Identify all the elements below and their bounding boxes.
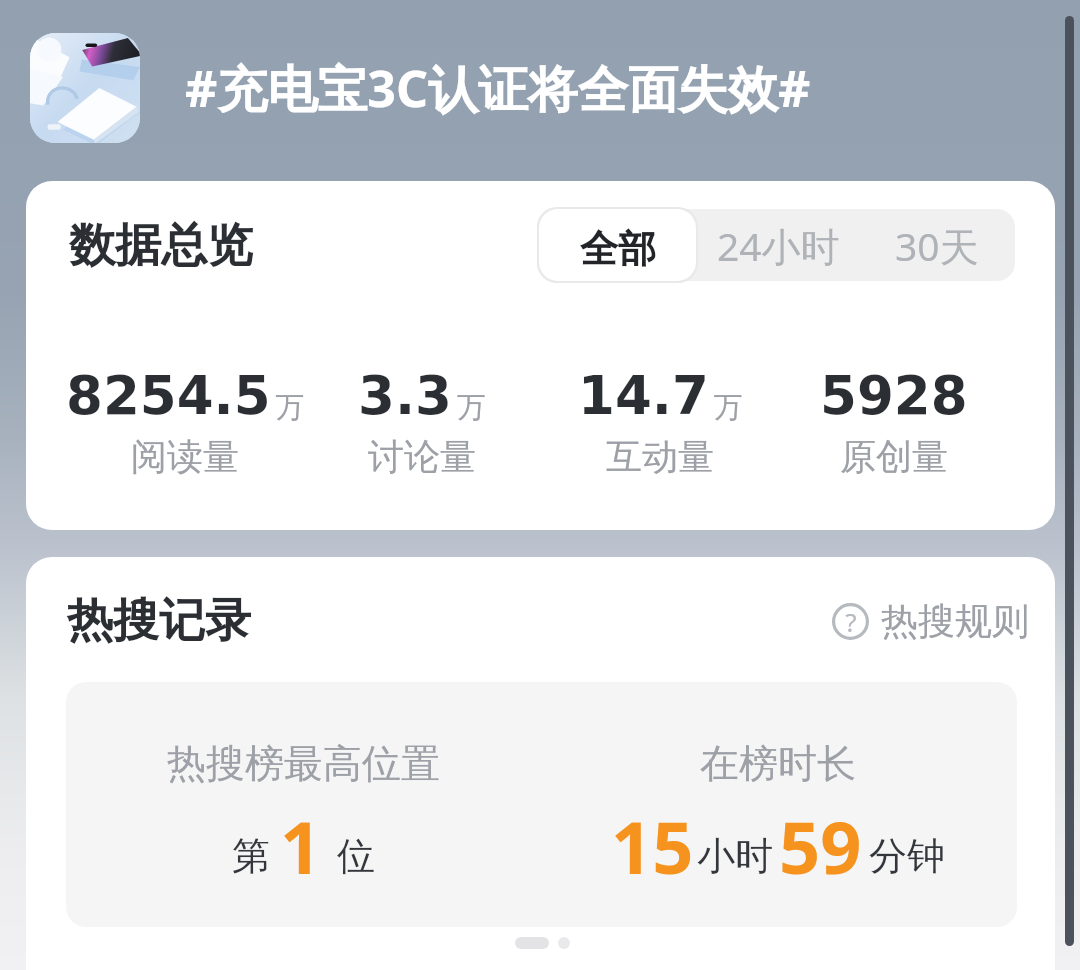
button[interactable]: 5928	[734, 365, 1054, 479]
staticText: 热搜榜最高位置	[167, 739, 440, 788]
staticText: 分钟	[869, 832, 945, 880]
staticText: 15	[611, 797, 694, 895]
button[interactable]: 热搜榜最高位置	[83, 682, 523, 927]
staticText: 1	[280, 797, 322, 895]
staticText: 5928	[820, 365, 968, 427]
staticText: 第	[232, 832, 270, 880]
staticText: 8254.5 万	[66, 365, 305, 427]
staticText: 全部	[580, 225, 656, 273]
button[interactable]: 热搜记录	[67, 592, 251, 650]
button[interactable]: 在榜时长	[558, 682, 998, 927]
staticText: 讨论量	[368, 434, 476, 479]
staticText: 14.7 万	[578, 365, 743, 427]
other: 热搜规则	[832, 603, 869, 640]
staticText: ?	[845, 604, 857, 639]
button[interactable]: 30天	[858, 209, 1015, 281]
button[interactable]: 3.3 万	[262, 365, 582, 479]
button[interactable]: 8254.5 万	[26, 365, 345, 479]
button[interactable]: 24小时	[698, 209, 858, 281]
staticText: 在榜时长	[700, 739, 856, 788]
staticText: 阅读量	[131, 434, 239, 479]
staticText: 3.3 万	[358, 365, 486, 427]
button[interactable]: 话题封面图	[0, 0, 1080, 176]
button[interactable]: 数据总览	[69, 217, 253, 275]
button[interactable]: 14.7 万	[500, 365, 820, 479]
staticText: 热搜规则	[881, 598, 1029, 645]
other: 话题封面图	[30, 33, 140, 143]
staticText: 原创量	[840, 434, 948, 479]
staticText: 热搜记录	[67, 592, 251, 650]
button[interactable]: 全部	[539, 209, 696, 281]
staticText: 互动量	[606, 434, 714, 479]
staticText: 24小时	[717, 219, 840, 272]
staticText: 30天	[895, 219, 979, 272]
staticText: 数据总览	[69, 217, 253, 275]
staticText: 位	[337, 832, 375, 880]
staticText: #充电宝3C认证将全面失效#	[185, 54, 811, 122]
staticText: 59	[779, 797, 862, 895]
button[interactable]: 热搜规则	[832, 598, 1029, 645]
staticText: 小时	[697, 832, 773, 880]
